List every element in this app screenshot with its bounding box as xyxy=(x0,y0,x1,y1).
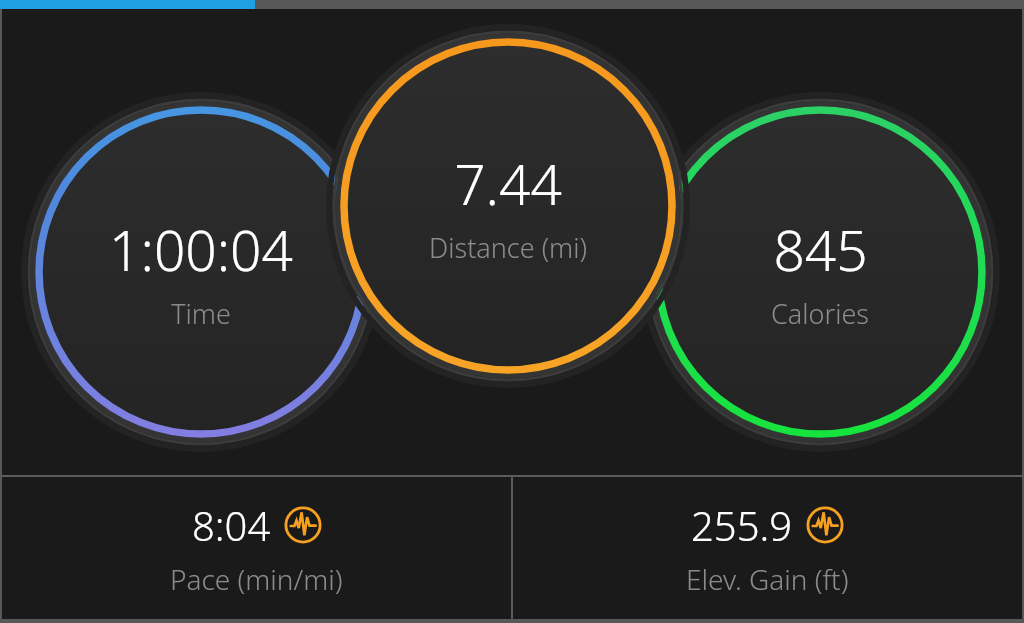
button[interactable]: 8:04 xyxy=(2,477,511,619)
button[interactable]: 255.9 xyxy=(513,477,1022,619)
staticText: Calories xyxy=(771,295,869,332)
staticText: Elev. Gain (ft) xyxy=(686,560,849,598)
staticText: 845 xyxy=(773,212,868,287)
button[interactable]: Calories 845 xyxy=(765,208,875,336)
staticText: Distance (mi) xyxy=(429,229,587,266)
staticText: Time xyxy=(171,295,231,332)
staticText: 8:04 xyxy=(192,498,271,552)
staticText: 255.9 xyxy=(691,498,793,552)
staticText: 7.44 xyxy=(454,146,562,221)
button[interactable]: Distance 7.44 miles xyxy=(423,142,593,270)
button[interactable]: Time 1:00:04 xyxy=(103,208,299,336)
staticText: Pace (min/mi) xyxy=(170,560,343,598)
staticText: 1:00:04 xyxy=(109,212,293,287)
